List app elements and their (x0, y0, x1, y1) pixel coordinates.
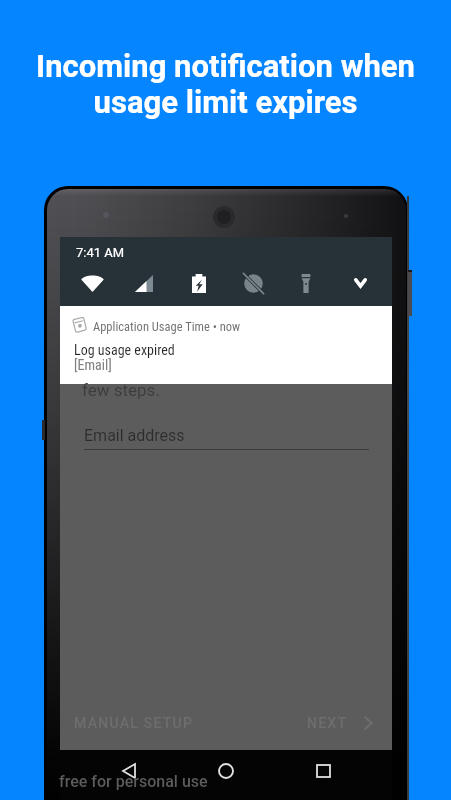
button[interactable]: Expand quick settings (336, 263, 384, 303)
staticText: Log usage expired (74, 342, 175, 358)
button[interactable]: Recent apps (299, 750, 347, 791)
other: Power (408, 270, 412, 316)
button[interactable]: NEXT (307, 715, 392, 731)
button[interactable]: Do not disturb (229, 263, 277, 303)
staticText: 7:41 AM (76, 245, 125, 260)
staticText: Incoming notification when usage limit e… (36, 48, 415, 121)
button[interactable]: Application Usage Time • now (60, 306, 392, 384)
button[interactable]: Back (105, 750, 153, 791)
staticText: few steps. (82, 380, 160, 400)
button[interactable]: Home (202, 750, 250, 791)
staticText: Application Usage Time • now (93, 319, 241, 334)
staticText: Email address (84, 426, 185, 445)
button[interactable]: Battery (175, 263, 223, 303)
button[interactable]: Wi-Fi (68, 263, 116, 303)
staticText: [Email] (74, 357, 112, 373)
button[interactable]: Mobile signal (120, 263, 168, 303)
staticText: free for personal use (59, 772, 208, 791)
button[interactable]: MANUAL SETUP (60, 715, 194, 731)
button[interactable]: Flashlight (282, 263, 330, 303)
staticText: NEXT (307, 715, 348, 731)
